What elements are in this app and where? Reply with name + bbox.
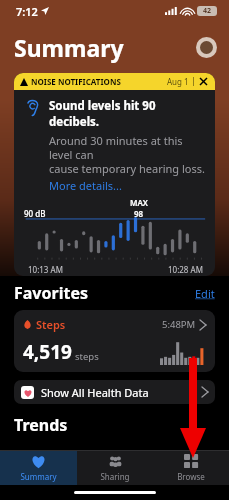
button[interactable]: Browse xyxy=(153,451,229,485)
staticText: Show All Health Data xyxy=(41,385,149,400)
button[interactable]: Summary xyxy=(0,451,77,485)
staticText: Sound levels hit 90 decibels. xyxy=(49,98,205,130)
staticText: Browse xyxy=(177,471,205,482)
staticText: 42 xyxy=(203,6,212,16)
staticText: Around 30 minutes at this level can caus… xyxy=(49,133,205,176)
button[interactable]: Profile xyxy=(196,37,217,58)
staticText: Trends xyxy=(14,414,68,436)
staticText: Favorites xyxy=(14,282,88,304)
button[interactable]: More details... xyxy=(49,178,122,193)
staticText: 90 dB xyxy=(24,208,46,219)
staticText: NOISE NOTIFICATIONS xyxy=(31,76,121,87)
staticText: steps xyxy=(75,350,99,363)
staticText: 4,519 xyxy=(23,339,72,365)
button[interactable]: Steps xyxy=(14,310,215,372)
button[interactable]: Dismiss xyxy=(198,76,209,87)
staticText: Summary xyxy=(14,32,124,63)
staticText: Steps xyxy=(36,317,66,332)
staticText: Aug 1 xyxy=(167,76,189,87)
button[interactable]: Sharing xyxy=(77,451,153,485)
staticText: Sharing xyxy=(100,471,130,482)
staticText: 10:13 AM xyxy=(28,264,63,275)
staticText: 98 xyxy=(134,208,144,219)
button[interactable]: Edit xyxy=(195,286,215,301)
staticText: 10:28 AM xyxy=(168,264,203,275)
staticText: Summary xyxy=(20,471,57,482)
button[interactable]: Show All Health Data xyxy=(14,380,215,404)
staticText: MAX xyxy=(130,197,148,208)
staticText: 7:12 xyxy=(16,4,38,19)
staticText: 5:48PM xyxy=(162,318,196,331)
